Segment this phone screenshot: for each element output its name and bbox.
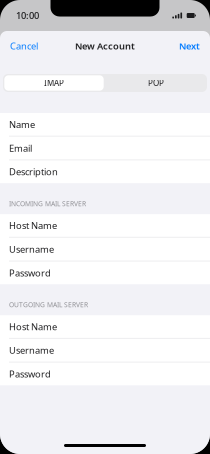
staticText: OUTGOING MAIL SERVER [9, 300, 88, 309]
staticText: 10:00 [16, 9, 39, 22]
button[interactable]: Username [0, 238, 210, 260]
staticText: Description [9, 166, 58, 178]
button[interactable]: Description [0, 160, 210, 183]
staticText: Cancel [10, 40, 38, 52]
staticText: Name [9, 118, 35, 131]
button[interactable]: Password [0, 363, 210, 385]
staticText: INCOMING MAIL SERVER [9, 199, 86, 208]
staticText: Email [9, 142, 32, 154]
staticText: Password [9, 368, 51, 380]
button[interactable]: Cancel [10, 40, 38, 52]
staticText: Username [9, 243, 54, 255]
button[interactable]: Next [179, 40, 200, 52]
staticText: Host Name [9, 320, 57, 333]
staticText: Next [179, 40, 200, 52]
button[interactable]: Host Name [0, 214, 210, 237]
button[interactable]: Name [0, 113, 210, 136]
button[interactable]: Password [0, 261, 210, 284]
staticText: New Account [75, 40, 135, 52]
staticText: Password [9, 267, 51, 279]
button[interactable]: Username [0, 339, 210, 362]
button[interactable]: Host Name [0, 315, 210, 338]
staticText: IMAP [44, 78, 64, 88]
button[interactable]: Email [0, 137, 210, 159]
staticText: POP [148, 78, 164, 88]
button[interactable]: IMAP [3, 74, 105, 92]
staticText: Host Name [9, 219, 57, 232]
button[interactable]: POP [105, 74, 207, 92]
staticText: Username [9, 344, 54, 356]
